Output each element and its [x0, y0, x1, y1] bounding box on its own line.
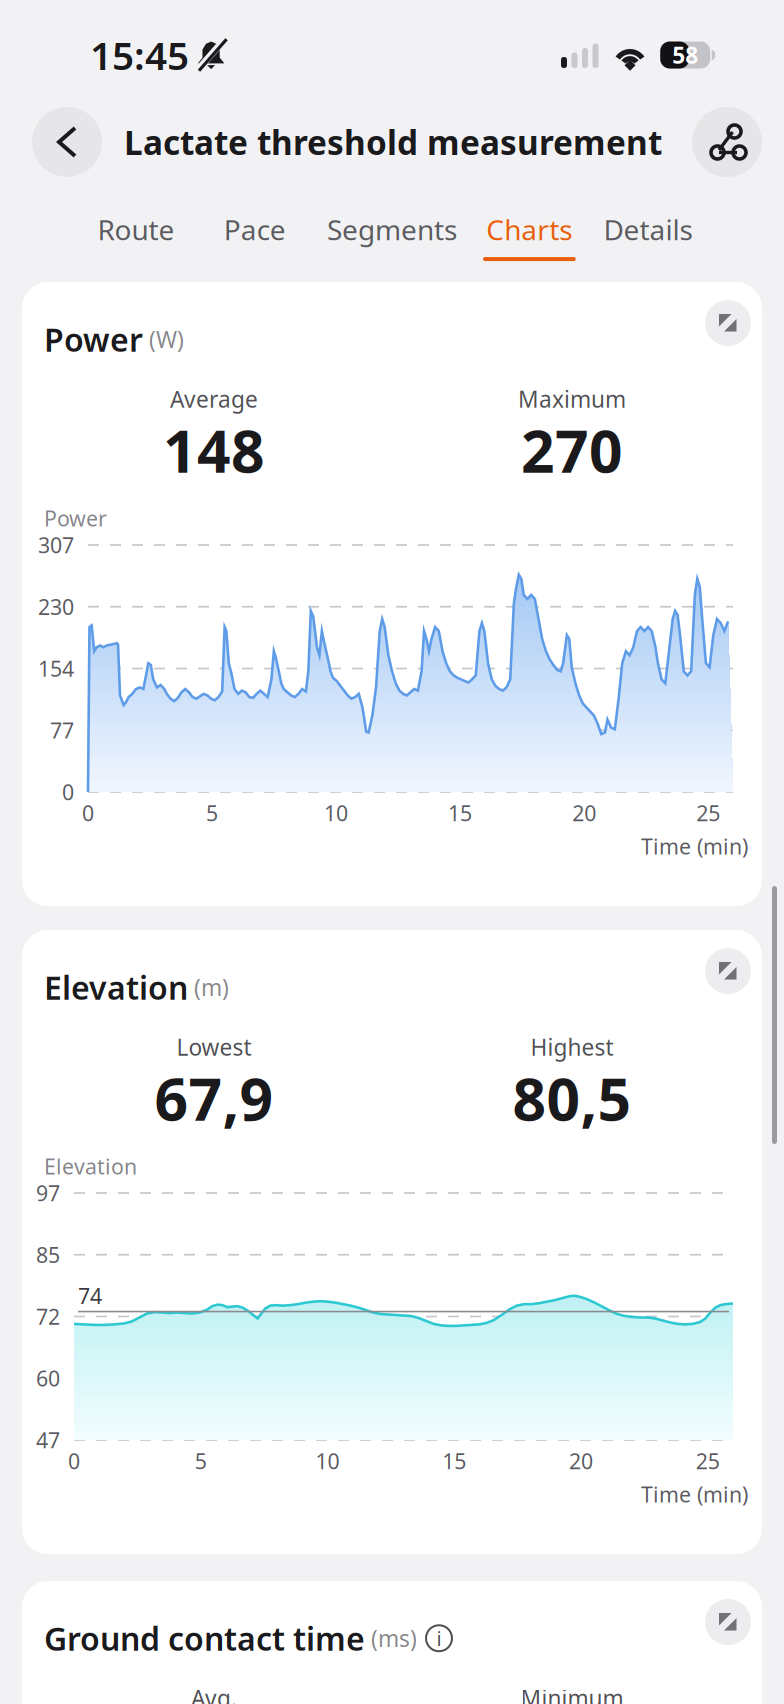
staticText: Segments — [327, 211, 457, 248]
button[interactable]: Charts — [470, 199, 589, 261]
staticText: 307 — [38, 531, 74, 559]
staticText: 15 — [442, 1447, 466, 1475]
staticText: Minimum — [520, 1683, 623, 1704]
staticText: 20 — [572, 799, 596, 827]
staticText: 58 — [672, 40, 698, 70]
staticText: 230 — [38, 593, 74, 621]
staticText: Maximum — [518, 384, 626, 414]
staticText: 77 — [50, 716, 74, 744]
staticText: 5 — [206, 799, 218, 827]
staticText: 15:45 — [90, 29, 189, 81]
staticText: Ground contact time — [44, 1617, 365, 1659]
button[interactable]: Pace — [195, 199, 314, 261]
staticText: 10 — [324, 799, 348, 827]
staticText: 60 — [36, 1364, 60, 1392]
staticText: 0 — [62, 778, 74, 806]
staticText: 20 — [569, 1447, 593, 1475]
button[interactable]: Expand Ground contact time chart — [705, 1599, 751, 1645]
staticText: 270 — [521, 411, 623, 489]
staticText: Elevation — [44, 1152, 137, 1180]
staticText: (m) — [188, 972, 229, 1002]
staticText: Details — [604, 211, 693, 248]
staticText: 80,5 — [512, 1059, 631, 1137]
staticText: Avg. — [191, 1683, 237, 1704]
staticText: Time (min) — [641, 1480, 748, 1508]
staticText: 15 — [448, 799, 472, 827]
button[interactable]: Details — [589, 199, 707, 261]
staticText: 72 — [36, 1302, 60, 1331]
staticText: 154 — [38, 654, 74, 683]
staticText: Elevation — [44, 966, 188, 1008]
staticText: Time (min) — [641, 832, 748, 860]
staticText: Pace — [224, 211, 286, 248]
button[interactable]: Expand Power chart — [705, 300, 751, 346]
staticText: Route — [97, 211, 174, 248]
staticText: 47 — [36, 1426, 60, 1454]
staticText: 97 — [36, 1179, 60, 1207]
staticText: 5 — [195, 1447, 207, 1475]
staticText: 67,9 — [154, 1059, 273, 1137]
staticText: Highest — [530, 1032, 613, 1062]
staticText: 25 — [696, 1447, 720, 1475]
staticText: 74 — [78, 1282, 102, 1310]
staticText: (ms) — [365, 1623, 417, 1653]
staticText: 0 — [68, 1447, 80, 1475]
staticText: Lactate threshold measurement — [124, 120, 662, 164]
staticText: Average — [170, 384, 258, 414]
staticText: Power — [44, 504, 107, 532]
staticText: 25 — [696, 799, 720, 827]
staticText: 10 — [315, 1447, 339, 1475]
staticText: i — [436, 1625, 441, 1652]
staticText: (W) — [143, 324, 184, 354]
staticText: 148 — [163, 411, 265, 489]
staticText: Charts — [486, 211, 572, 248]
staticText: Lowest — [176, 1032, 251, 1062]
staticText: Power — [44, 318, 143, 360]
staticText: 0 — [82, 799, 94, 827]
button[interactable]: Share — [692, 107, 762, 177]
staticText: 85 — [36, 1241, 60, 1269]
button[interactable]: Expand Elevation chart — [705, 948, 751, 994]
button[interactable]: Back — [32, 107, 102, 177]
button[interactable]: Route — [77, 199, 195, 261]
button[interactable]: Segments — [314, 199, 470, 261]
